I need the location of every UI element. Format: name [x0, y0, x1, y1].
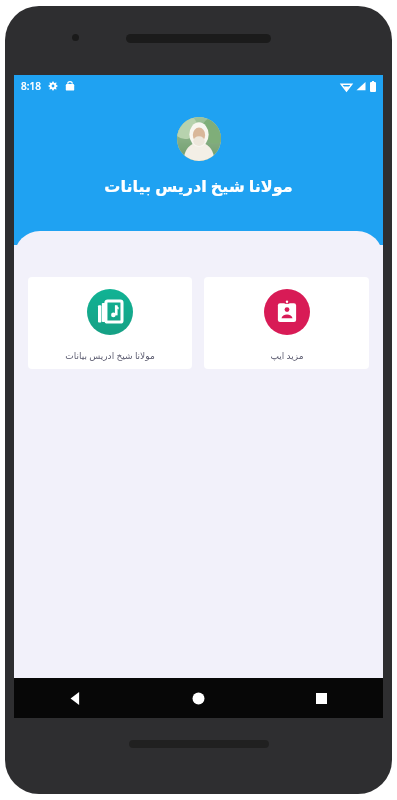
button[interactable]: Home: [137, 678, 260, 718]
button[interactable]: Recent apps: [260, 678, 383, 718]
staticText: 8:18: [21, 79, 41, 93]
staticText: مزید ایپ: [270, 349, 304, 361]
button[interactable]: Back: [14, 678, 137, 718]
button[interactable]: مولانا شیخ ادریس بیانات: [28, 277, 192, 369]
staticText: مولانا شیخ ادریس بیانات: [104, 175, 293, 197]
staticText: مولانا شیخ ادریس بیانات: [65, 349, 155, 361]
other: Profile photo: [177, 117, 221, 161]
button[interactable]: مزید ایپ: [204, 277, 369, 369]
